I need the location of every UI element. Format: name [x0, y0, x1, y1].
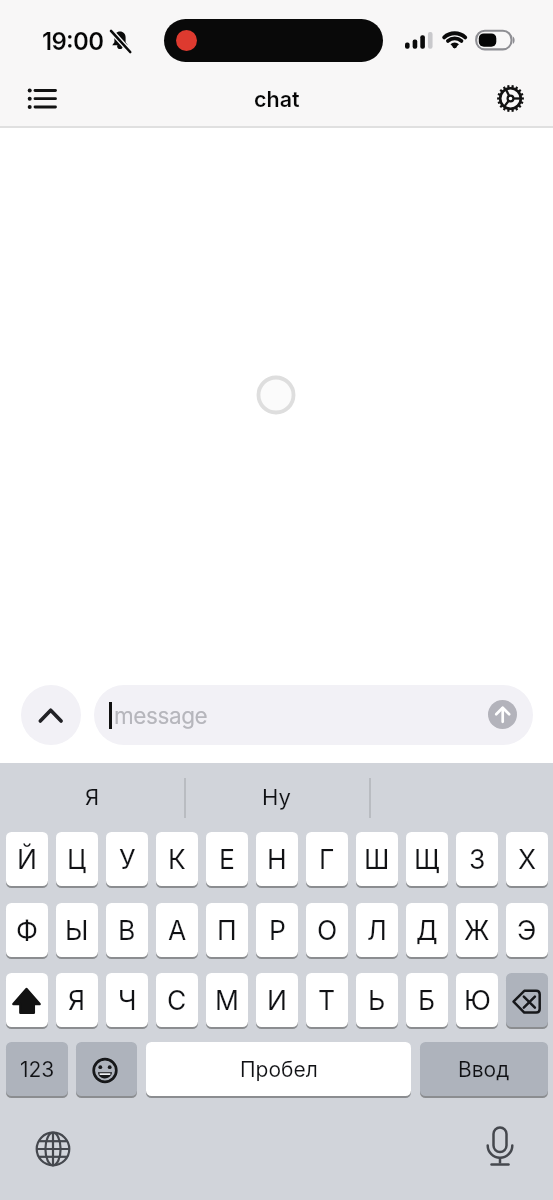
button[interactable]: Пробел [146, 1042, 411, 1096]
button[interactable]: Д [406, 903, 448, 957]
staticText: Ж [464, 914, 490, 946]
button[interactable]: Ну [184, 763, 368, 832]
staticText: 19:00 [42, 27, 104, 56]
button[interactable]: З [456, 832, 498, 886]
staticText: Й [17, 843, 37, 875]
staticText: Т [318, 984, 336, 1016]
staticText: Я [85, 784, 100, 811]
staticText: И [267, 984, 287, 1016]
staticText: Х [518, 843, 537, 875]
button[interactable]: Ь [356, 973, 398, 1027]
button[interactable]: Р [256, 903, 298, 957]
staticText: Е [219, 843, 235, 875]
staticText: Р [269, 914, 286, 946]
button[interactable] [506, 973, 548, 1027]
button[interactable]: Я [56, 973, 98, 1027]
staticText: К [168, 843, 186, 875]
staticText: Ю [464, 984, 491, 1016]
staticText: Б [418, 984, 436, 1016]
button[interactable]: С [156, 973, 198, 1027]
button[interactable]: О [306, 903, 348, 957]
button[interactable]: 123 [6, 1042, 68, 1096]
button[interactable]: П [206, 903, 248, 957]
button[interactable] [488, 700, 517, 729]
staticText: 123 [20, 1057, 55, 1082]
staticText: Д [416, 914, 438, 946]
button[interactable]: Ц [56, 832, 98, 886]
staticText: М [215, 984, 239, 1016]
staticText: Ь [368, 984, 386, 1016]
staticText: Ну [262, 784, 291, 811]
staticText: С [167, 984, 187, 1016]
button[interactable]: Й [6, 832, 48, 886]
button[interactable]: Ш [356, 832, 398, 886]
staticText: Ввод [458, 1057, 510, 1082]
button[interactable] [6, 973, 48, 1027]
button[interactable]: Ф [6, 903, 48, 957]
button[interactable]: Ч [106, 973, 148, 1027]
staticText: П [217, 914, 237, 946]
button[interactable]: Ввод [420, 1042, 548, 1096]
button[interactable]: Я [0, 763, 184, 832]
button[interactable]: Щ [406, 832, 448, 886]
staticText: Н [267, 843, 287, 875]
staticText: Ц [67, 843, 87, 875]
button[interactable] [94, 685, 533, 745]
button[interactable]: Х [506, 832, 548, 886]
button[interactable]: Г [306, 832, 348, 886]
button[interactable]: У [106, 832, 148, 886]
button[interactable] [20, 80, 62, 118]
button[interactable] [34, 1130, 72, 1168]
button[interactable]: Ю [456, 973, 498, 1027]
staticText: Щ [414, 843, 440, 875]
staticText: У [119, 843, 136, 875]
staticText: З [469, 843, 486, 875]
staticText: Ы [65, 914, 89, 946]
staticText: О [317, 914, 338, 946]
button[interactable]: М [206, 973, 248, 1027]
button[interactable] [76, 1042, 137, 1096]
button[interactable]: Л [356, 903, 398, 957]
button[interactable] [21, 685, 81, 745]
button[interactable]: Е [206, 832, 248, 886]
staticText: Ч [118, 984, 137, 1016]
button[interactable]: К [156, 832, 198, 886]
button[interactable]: И [256, 973, 298, 1027]
button[interactable]: Н [256, 832, 298, 886]
button[interactable]: Ж [456, 903, 498, 957]
staticText: message [114, 702, 208, 729]
staticText: Ш [364, 843, 390, 875]
button[interactable]: Э [506, 903, 548, 957]
staticText: Г [319, 843, 335, 875]
staticText: chat [254, 86, 300, 112]
staticText: Л [367, 914, 387, 946]
staticText: Ф [16, 914, 38, 946]
staticText: Я [68, 984, 86, 1016]
staticText: В [118, 914, 136, 946]
button[interactable]: А [156, 903, 198, 957]
staticText: Э [517, 914, 537, 946]
button[interactable]: В [106, 903, 148, 957]
button[interactable]: Т [306, 973, 348, 1027]
button[interactable]: Б [406, 973, 448, 1027]
staticText: А [168, 914, 187, 946]
staticText: Пробел [240, 1057, 318, 1082]
button[interactable]: Ы [56, 903, 98, 957]
button[interactable] [482, 1124, 518, 1170]
button[interactable] [494, 82, 528, 116]
